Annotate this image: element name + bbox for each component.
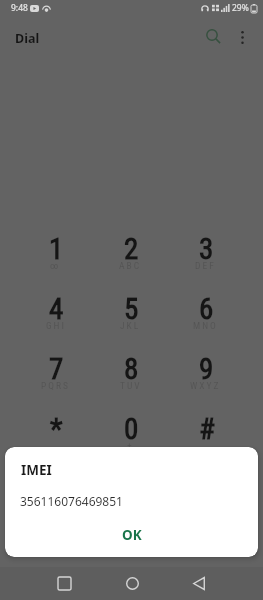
staticText: 8 [124, 352, 139, 386]
staticText: ∞ [50, 260, 61, 271]
staticText: 29% [232, 2, 249, 14]
staticText: 1 [49, 232, 64, 266]
staticText: MNO [193, 320, 218, 331]
button[interactable]: Recents [44, 567, 84, 600]
staticText: 5 [124, 292, 139, 326]
button[interactable]: 2 [94, 221, 169, 281]
button[interactable]: 4 [19, 281, 94, 341]
button[interactable]: 9 [169, 341, 244, 401]
staticText: WXYZ [190, 380, 221, 391]
staticText: 9 [199, 352, 214, 386]
staticText: TUV [120, 380, 142, 391]
staticText: JKL [120, 320, 141, 331]
staticText: * [50, 412, 63, 446]
staticText: DEF [195, 260, 216, 271]
staticText: 7 [49, 352, 64, 386]
button[interactable]: 6 [169, 281, 244, 341]
button[interactable]: 1 [19, 221, 94, 281]
button[interactable]: 5 [94, 281, 169, 341]
button[interactable]: 0 [94, 401, 169, 461]
staticText: 356116076469851 [20, 493, 123, 509]
button[interactable]: More options [227, 22, 257, 52]
button[interactable]: Back [179, 567, 219, 600]
staticText: 0 [124, 412, 139, 446]
staticText: GHI [46, 320, 66, 331]
button[interactable]: 3 [169, 221, 244, 281]
button[interactable]: # [169, 401, 244, 461]
button[interactable]: Home [112, 567, 152, 600]
button[interactable]: 7 [19, 341, 94, 401]
staticText: 4 [49, 292, 64, 326]
button[interactable]: * [19, 401, 94, 461]
staticText: + [127, 440, 134, 451]
staticText: Dial [15, 30, 40, 47]
button[interactable]: OK [108, 522, 156, 548]
staticText: 2 [124, 232, 139, 266]
button[interactable]: Search [198, 21, 228, 51]
staticText: # [199, 412, 215, 446]
staticText: 3 [199, 232, 214, 266]
staticText: 9:48 [11, 2, 28, 14]
staticText: 6 [199, 292, 214, 326]
button[interactable]: 8 [94, 341, 169, 401]
staticText: IMEI [21, 461, 52, 479]
staticText: ABC [119, 260, 142, 271]
staticText: PQRS [41, 380, 70, 391]
staticText: OK [122, 526, 142, 544]
